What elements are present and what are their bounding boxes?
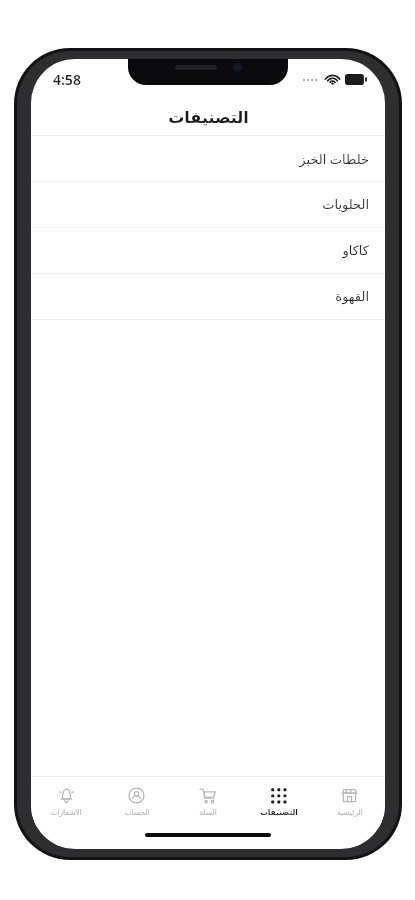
staticText: الرئيسية xyxy=(337,808,363,817)
staticText: الحساب xyxy=(124,808,150,817)
staticText: كاكاو xyxy=(342,243,369,258)
staticText: التصنيفات xyxy=(260,808,298,817)
button[interactable]: الحساب xyxy=(101,777,172,827)
button[interactable]: التصنيفات xyxy=(243,777,314,827)
button[interactable]: الاشعارات xyxy=(31,777,101,827)
staticText: الحلويات xyxy=(322,197,369,212)
button[interactable]: الرئيسية xyxy=(314,777,385,827)
button[interactable]: الحلويات xyxy=(31,182,385,227)
staticText: القهوة xyxy=(335,289,369,304)
staticText: الاشعارات xyxy=(50,808,82,817)
button[interactable]: القهوة xyxy=(31,274,385,319)
button[interactable]: السلة xyxy=(172,777,243,827)
staticText: خلطات الخبز xyxy=(299,150,369,168)
staticText: السلة xyxy=(199,808,217,817)
button[interactable]: كاكاو xyxy=(31,228,385,273)
button[interactable]: خلطات الخبز xyxy=(31,136,385,181)
staticText: 4:58 xyxy=(53,70,81,89)
staticText: التصنيفات xyxy=(168,108,249,127)
